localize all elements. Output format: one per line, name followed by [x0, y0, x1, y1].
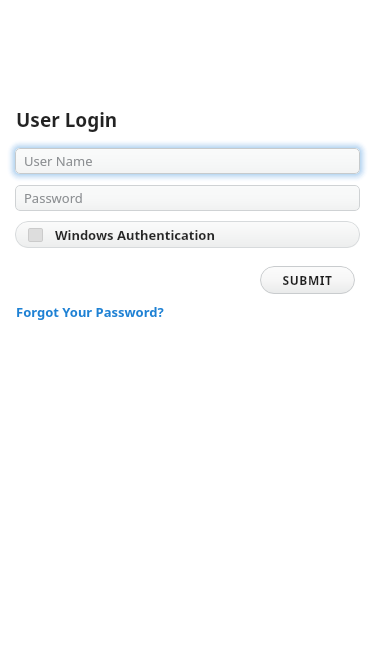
button[interactable]: Forgot Your Password?	[16, 303, 164, 321]
staticText: Windows Authentication	[55, 226, 215, 244]
button[interactable]: SUBMIT	[260, 266, 355, 294]
staticText: SUBMIT	[282, 272, 333, 288]
button[interactable]: User Name	[0, 144, 375, 178]
button[interactable]: Password	[15, 185, 360, 211]
staticText: User Name	[24, 152, 93, 170]
button[interactable]: Windows Authentication	[15, 221, 360, 248]
staticText: Password	[24, 189, 83, 207]
staticText: Forgot Your Password?	[16, 303, 164, 321]
staticText: User Login	[16, 107, 118, 133]
